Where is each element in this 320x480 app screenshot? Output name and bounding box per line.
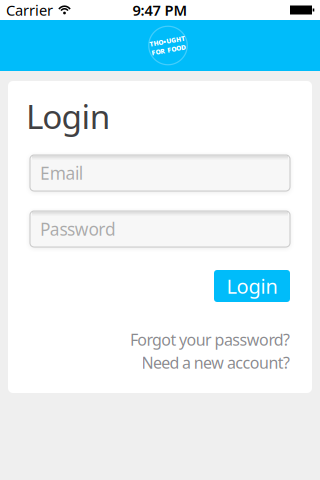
button[interactable]: Forgot your password?	[130, 329, 290, 350]
staticText: 9:47 PM	[132, 0, 187, 20]
button[interactable]: Password	[30, 211, 290, 247]
staticText: Password	[40, 217, 116, 240]
staticText: Carrier	[6, 0, 53, 20]
button[interactable]: Email	[30, 155, 290, 191]
button[interactable]: Login	[214, 270, 290, 302]
staticText: Login	[26, 94, 111, 138]
staticText: THO•UGHT	[150, 37, 186, 45]
staticText: Login	[226, 273, 277, 299]
staticText: FOR FOOD	[150, 45, 185, 54]
staticText: Email	[40, 161, 83, 184]
button[interactable]: Need a new account?	[142, 352, 290, 373]
staticText: Need a new account?	[142, 352, 290, 373]
staticText: Forgot your password?	[130, 329, 290, 350]
